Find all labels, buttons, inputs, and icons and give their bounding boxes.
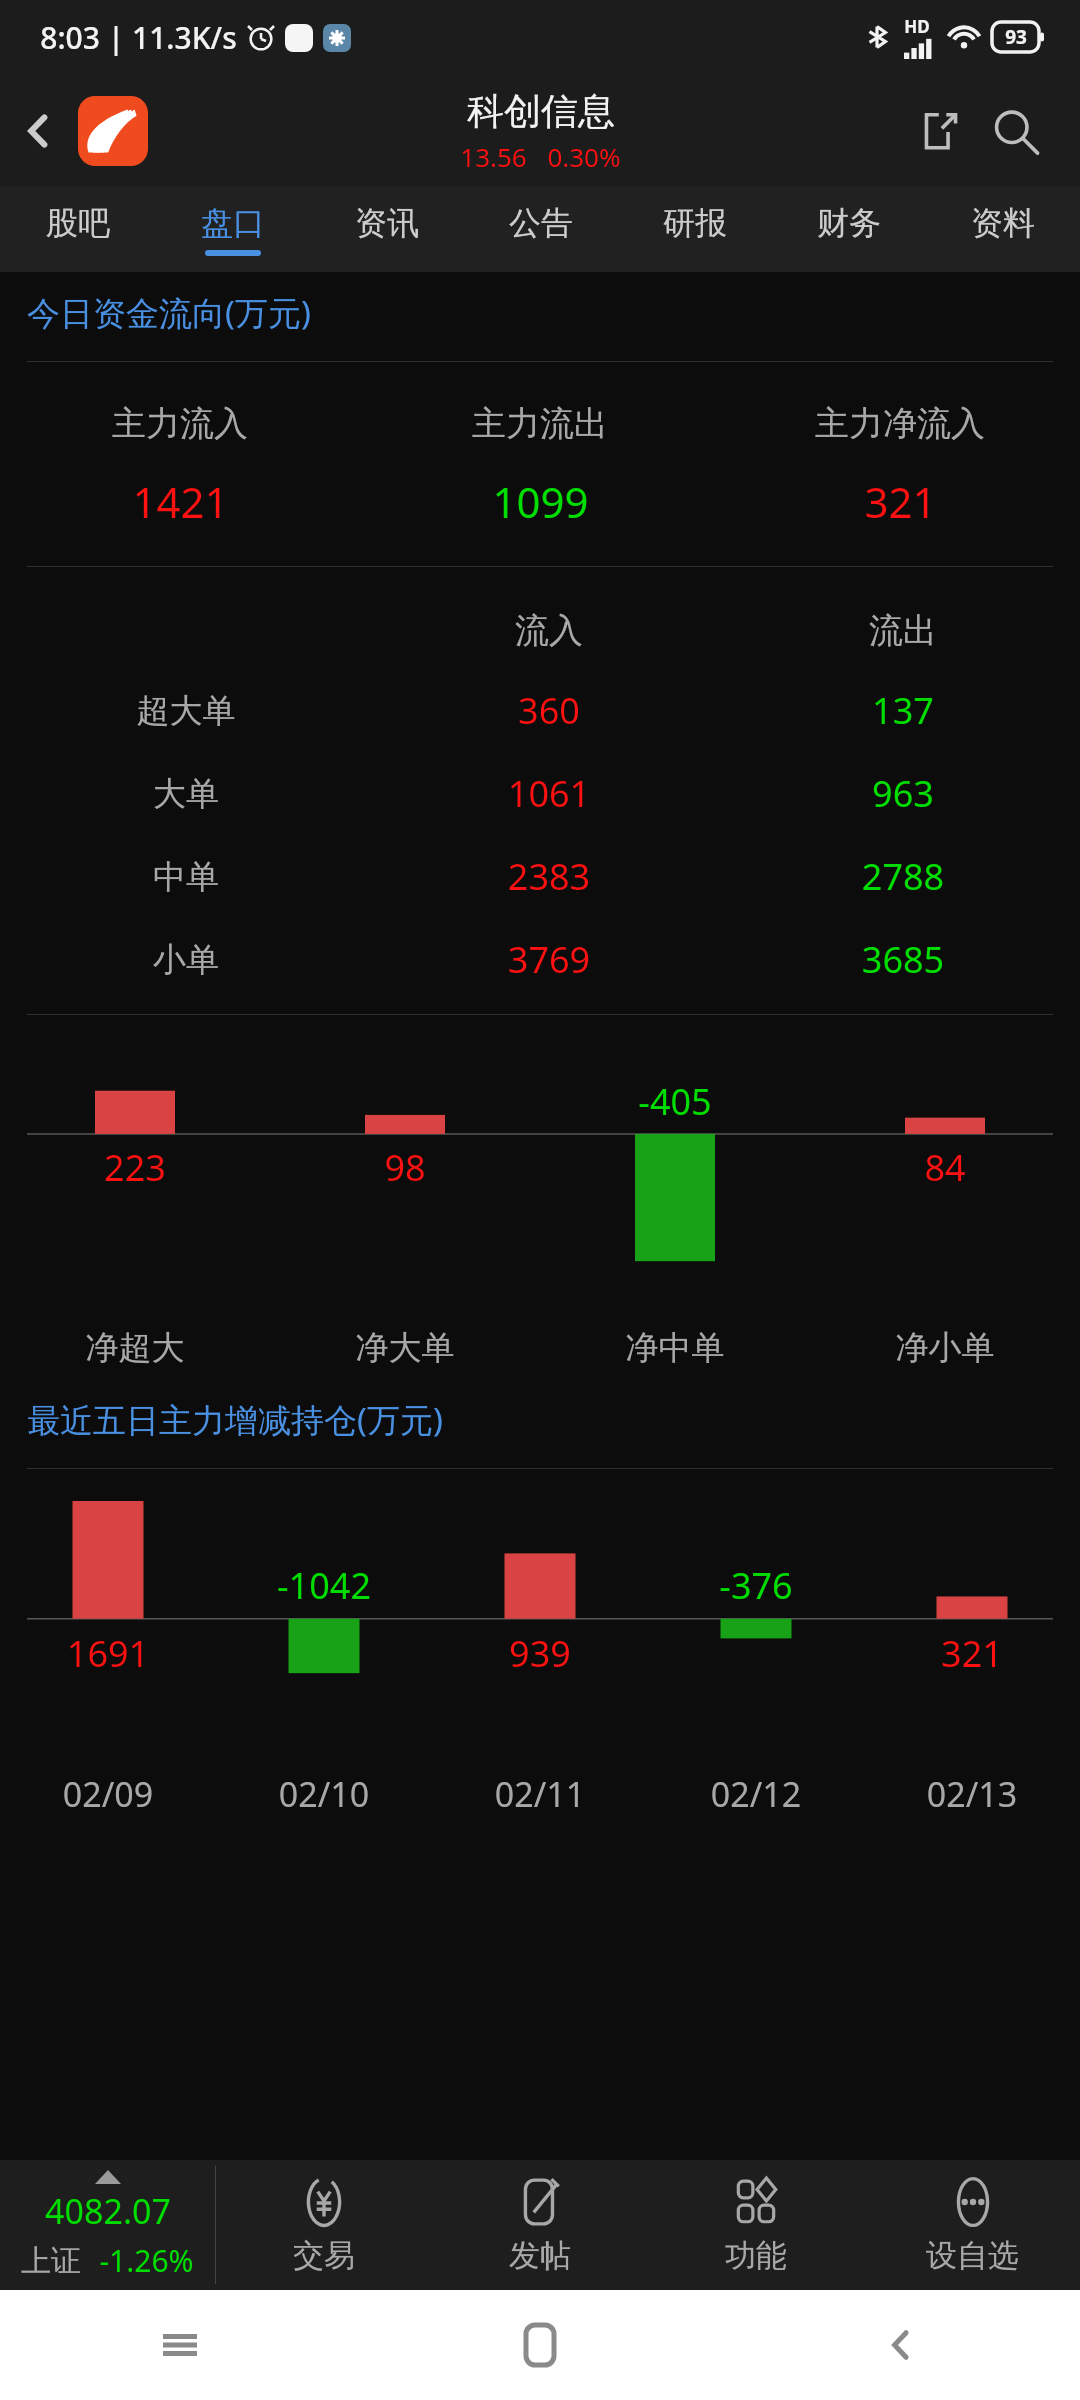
staticText: 中单 bbox=[0, 856, 372, 898]
staticText: 321 bbox=[864, 1629, 1080, 1678]
button[interactable]: Back bbox=[0, 74, 76, 187]
button[interactable]: 公告 bbox=[464, 187, 618, 272]
staticText: 1691 bbox=[0, 1629, 216, 1678]
staticText: 净大单 bbox=[270, 1327, 540, 1369]
staticText: 1421 bbox=[132, 473, 229, 530]
button[interactable]: 中单 bbox=[0, 852, 1080, 901]
staticText: -376 bbox=[648, 1561, 864, 1610]
staticText: 13.56 bbox=[460, 139, 527, 174]
staticText: 939 bbox=[432, 1629, 648, 1678]
staticText: 交易 bbox=[293, 2236, 355, 2275]
staticText: 主力流出 bbox=[472, 402, 608, 445]
staticText: 223 bbox=[0, 1143, 270, 1192]
button[interactable]: 盘口 bbox=[155, 187, 310, 272]
staticText: 财务 bbox=[817, 203, 881, 243]
staticText: 今日资金流向(万元) bbox=[27, 290, 1080, 335]
staticText: 功能 bbox=[725, 2236, 787, 2275]
staticText: 360 bbox=[372, 686, 726, 735]
staticText: 2788 bbox=[726, 852, 1080, 901]
button[interactable]: 发帖 bbox=[432, 2160, 648, 2290]
staticText: 超大单 bbox=[0, 690, 372, 732]
staticText: 流出 bbox=[726, 609, 1080, 652]
staticText: 设自选 bbox=[926, 2236, 1019, 2275]
button[interactable]: 大单 bbox=[0, 769, 1080, 818]
button[interactable]: 研报 bbox=[618, 187, 772, 272]
staticText: 盘口 bbox=[201, 203, 265, 243]
staticText: -1.26% bbox=[99, 2240, 194, 2281]
button[interactable]: 超大单 bbox=[0, 686, 1080, 735]
staticText: 大单 bbox=[0, 773, 372, 815]
staticText: 2383 bbox=[372, 852, 726, 901]
button[interactable]: 设自选 bbox=[864, 2160, 1080, 2290]
staticText: 最近五日主力增减持仓(万元) bbox=[27, 1397, 1080, 1442]
staticText: 股吧 bbox=[46, 203, 110, 243]
button[interactable]: Search bbox=[978, 94, 1052, 168]
staticText: 321 bbox=[864, 473, 937, 530]
button[interactable]: 交易 bbox=[216, 2160, 432, 2290]
staticText: 93 bbox=[1005, 24, 1027, 50]
staticText: 科创信息 bbox=[467, 88, 615, 135]
button[interactable]: 股吧 bbox=[0, 187, 155, 272]
staticText: 0.30% bbox=[547, 139, 621, 174]
button[interactable]: Back bbox=[720, 2290, 1080, 2400]
staticText: 84 bbox=[810, 1143, 1080, 1192]
button[interactable]: 财务 bbox=[772, 187, 926, 272]
button[interactable]: Recents bbox=[0, 2290, 360, 2400]
staticText: 02/09 bbox=[0, 1771, 216, 1817]
staticText: 主力流入 bbox=[112, 402, 248, 445]
staticText: -1042 bbox=[216, 1561, 432, 1610]
staticText: 1099 bbox=[492, 473, 589, 530]
staticText: 资讯 bbox=[355, 203, 419, 243]
button[interactable]: Share bbox=[904, 94, 978, 168]
staticText: 02/12 bbox=[648, 1771, 864, 1817]
staticText: 98 bbox=[270, 1143, 540, 1192]
staticText: 资料 bbox=[971, 203, 1035, 243]
staticText: 上证 bbox=[21, 2242, 81, 2280]
button[interactable]: 资料 bbox=[926, 187, 1080, 272]
staticText: 1061 bbox=[372, 769, 726, 818]
staticText: 137 bbox=[726, 686, 1080, 735]
staticText: 4082.07 bbox=[45, 2188, 171, 2234]
staticText: 流入 bbox=[372, 609, 726, 652]
staticText: -405 bbox=[540, 1077, 810, 1126]
staticText: 净中单 bbox=[540, 1327, 810, 1369]
staticText: 研报 bbox=[663, 203, 727, 243]
button[interactable]: App logo bbox=[78, 96, 148, 166]
staticText: 02/11 bbox=[432, 1771, 648, 1817]
staticText: 净小单 bbox=[810, 1327, 1080, 1369]
staticText: 3685 bbox=[726, 935, 1080, 984]
staticText: 小单 bbox=[0, 939, 372, 981]
button[interactable]: Home bbox=[360, 2290, 720, 2400]
staticText: 02/13 bbox=[864, 1771, 1080, 1817]
staticText: 公告 bbox=[509, 203, 573, 243]
staticText: HD bbox=[904, 15, 930, 38]
staticText: 963 bbox=[726, 769, 1080, 818]
button[interactable]: 资讯 bbox=[310, 187, 464, 272]
button[interactable]: 功能 bbox=[648, 2160, 864, 2290]
staticText: 净超大 bbox=[0, 1327, 270, 1369]
button[interactable]: 小单 bbox=[0, 935, 1080, 984]
staticText: 3769 bbox=[372, 935, 726, 984]
staticText: 发帖 bbox=[509, 2236, 571, 2275]
staticText: 8:03 | 11.3K/s bbox=[40, 17, 237, 58]
staticText: 主力净流入 bbox=[815, 402, 985, 445]
staticText: 02/10 bbox=[216, 1771, 432, 1817]
button[interactable]: 4082.07 bbox=[0, 2160, 215, 2290]
